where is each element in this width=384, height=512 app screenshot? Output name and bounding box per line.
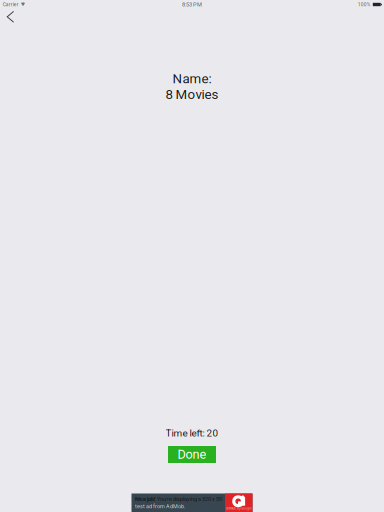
staticText: Time left: 20 xyxy=(165,427,218,439)
staticText: 8 Movies xyxy=(165,86,218,102)
staticText: test ad from AdMob. xyxy=(135,503,185,509)
staticText: AdMob by Google xyxy=(226,507,251,510)
staticText: 8:53 PM xyxy=(182,1,202,8)
staticText: Done xyxy=(177,447,206,462)
staticText: 100% xyxy=(358,2,371,7)
button[interactable]: Done xyxy=(168,446,216,463)
button[interactable]: AdMob test advertisement xyxy=(131,493,252,512)
staticText: Carrier xyxy=(3,2,19,7)
button[interactable]: Back xyxy=(0,9,26,25)
staticText: Nice job! You're displaying a 320 x 50 xyxy=(135,496,222,502)
staticText: Name: xyxy=(172,71,211,86)
